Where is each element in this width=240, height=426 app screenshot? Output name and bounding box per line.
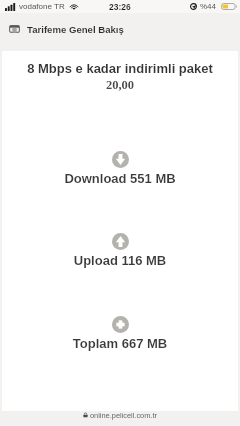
staticText: 8 Mbps e kadar indirimli paket	[2, 61, 238, 76]
button[interactable]: Toplam 667 MB	[2, 316, 238, 352]
other: Upload 116 MB	[112, 233, 129, 250]
staticText: Toplam 667 MB	[2, 336, 238, 351]
staticText: Tarifeme Genel Bakış	[27, 24, 124, 35]
staticText: 23:26	[109, 2, 131, 11]
staticText: online.pelicell.com.tr	[90, 411, 157, 419]
button[interactable]: Download 551 MB	[2, 151, 238, 187]
other: Download 551 MB	[112, 151, 129, 168]
button[interactable]: online.pelicell.com.tr	[73, 410, 167, 420]
button[interactable]: Upload 116 MB	[2, 233, 238, 269]
staticText: 20,00	[2, 78, 238, 92]
staticText: Download 551 MB	[2, 171, 238, 186]
staticText: vodafone TR	[19, 2, 65, 11]
button[interactable]: Tabs	[0, 13, 240, 50]
other: Toplam 667 MB	[112, 316, 129, 333]
other: Tabs	[9, 24, 20, 34]
staticText: Upload 116 MB	[2, 253, 238, 268]
staticText: %44	[200, 2, 217, 11]
